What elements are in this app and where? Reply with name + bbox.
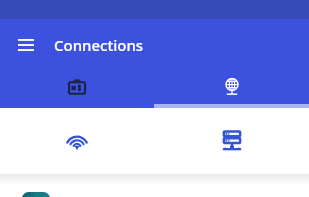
button[interactable]: Contact avatar	[22, 192, 50, 197]
button[interactable]: Network connections tab	[154, 71, 309, 108]
button[interactable]: Open navigation menu	[12, 31, 40, 59]
staticText: Connections	[54, 35, 144, 55]
button[interactable]: Wi-Fi	[0, 108, 154, 174]
button[interactable]: Work connections tab	[0, 71, 154, 108]
button[interactable]: Network servers	[154, 108, 309, 174]
